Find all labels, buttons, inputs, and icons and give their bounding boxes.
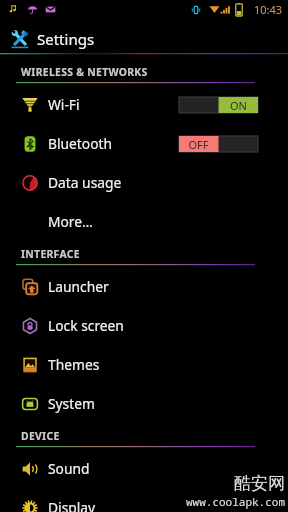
button[interactable]: Themes xyxy=(0,345,288,384)
staticText: More… xyxy=(48,212,93,231)
button[interactable]: System xyxy=(0,384,288,423)
staticText: www.coolapk.com xyxy=(186,494,285,509)
staticText: Display xyxy=(48,498,96,512)
staticText: Sound xyxy=(48,459,90,478)
staticText: Bluetooth xyxy=(48,134,113,153)
staticText: Data usage xyxy=(48,173,122,192)
staticText: WIRELESS & NETWORKS xyxy=(21,65,148,79)
button[interactable]: Launcher xyxy=(0,267,288,306)
button[interactable]: Sound xyxy=(0,449,288,488)
staticText: OFF xyxy=(179,137,218,152)
button[interactable]: OFF xyxy=(179,136,258,152)
staticText: DEVICE xyxy=(21,429,60,443)
button[interactable]: Display xyxy=(0,488,288,512)
other: Settings xyxy=(10,29,30,49)
button[interactable]: Data usage xyxy=(0,163,288,202)
staticText: Lock screen xyxy=(48,316,124,335)
staticText: System xyxy=(48,394,95,413)
staticText: INTERFACE xyxy=(21,247,80,261)
staticText: Wi-Fi xyxy=(48,95,80,114)
staticText: Launcher xyxy=(48,277,109,296)
button[interactable]: More… xyxy=(0,202,288,241)
button[interactable]: Wi-Fi xyxy=(0,85,288,124)
button[interactable]: Bluetooth xyxy=(0,124,288,163)
button[interactable]: Lock screen xyxy=(0,306,288,345)
staticText: Themes xyxy=(48,355,100,374)
staticText: 10:43 xyxy=(254,2,283,17)
staticText: ON xyxy=(219,98,258,113)
staticText: 酷安网 xyxy=(234,473,285,494)
staticText: Settings xyxy=(37,29,95,49)
button[interactable]: ON xyxy=(179,97,258,113)
